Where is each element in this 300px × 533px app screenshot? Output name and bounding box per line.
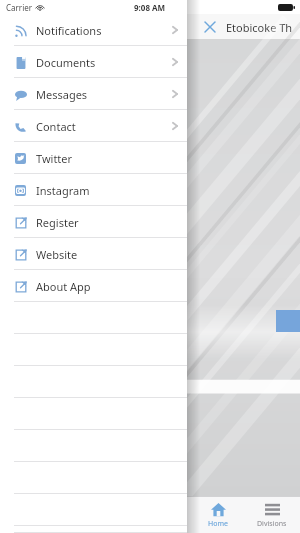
staticText: About App — [36, 279, 91, 294]
button[interactable]: Notifications — [0, 14, 187, 46]
button[interactable]: Twitter — [0, 142, 187, 174]
staticText: Website — [36, 247, 78, 262]
staticText: Carrier — [6, 2, 33, 13]
staticText: Register — [36, 215, 79, 230]
button[interactable]: Home — [192, 496, 244, 533]
button[interactable]: Divisions — [246, 496, 298, 533]
staticText: Home — [208, 519, 228, 529]
staticText: Messages — [36, 87, 88, 102]
staticText: Etobicoke Th — [226, 20, 293, 35]
button[interactable]: Instagram — [0, 174, 187, 206]
staticText: 9:08 AM — [134, 2, 166, 13]
button[interactable]: Documents — [0, 46, 187, 78]
button[interactable]: Contact — [0, 110, 187, 142]
button[interactable]: Messages — [0, 78, 187, 110]
button[interactable]: About App — [0, 270, 187, 302]
staticText: Contact — [36, 119, 76, 134]
button[interactable]: Register — [0, 206, 187, 238]
staticText: Instagram — [36, 183, 90, 198]
staticText: Twitter — [36, 151, 73, 166]
button[interactable]: Website — [0, 238, 187, 270]
staticText: Notifications — [36, 23, 102, 38]
staticText: Documents — [36, 55, 96, 70]
button[interactable]: Close — [200, 17, 220, 37]
staticText: Divisions — [257, 519, 287, 529]
